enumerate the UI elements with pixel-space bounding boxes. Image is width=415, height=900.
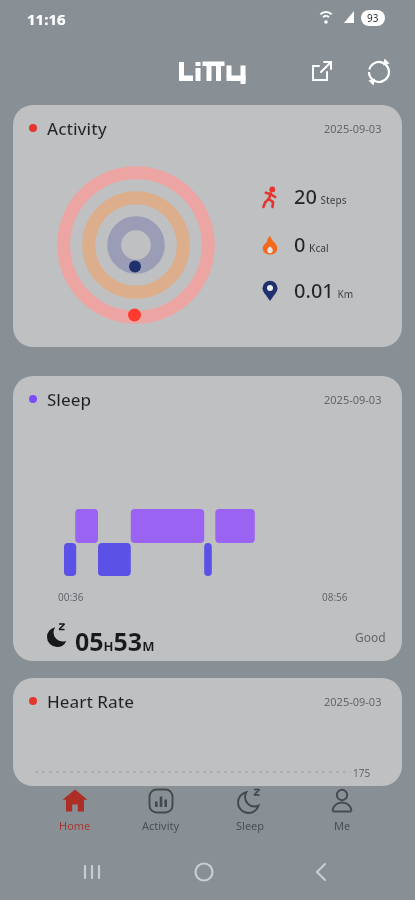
staticText: Heart Rate	[47, 690, 135, 713]
button[interactable]: Home	[35, 784, 115, 842]
button[interactable]	[306, 55, 338, 87]
staticText: Activity	[47, 117, 107, 140]
staticText: Me	[334, 818, 351, 833]
staticText: Sleep	[47, 388, 91, 411]
staticText: 11:16	[27, 9, 66, 29]
button[interactable]: Heart Rate	[13, 678, 402, 786]
staticText: 05H53M	[75, 624, 155, 658]
staticText: 20 Steps	[294, 183, 347, 210]
staticText: Good	[355, 629, 386, 645]
staticText: 00:36	[58, 590, 84, 604]
staticText: 2025-09-03	[324, 121, 382, 136]
button[interactable]: Me	[302, 784, 382, 842]
staticText: Activity	[142, 818, 180, 833]
button[interactable]: Activity	[121, 784, 201, 842]
staticText: 0 Kcal	[294, 231, 329, 258]
staticText: 175	[353, 766, 371, 780]
staticText: 08:56	[322, 590, 348, 604]
staticText: 2025-09-03	[324, 392, 382, 407]
staticText: 0.01 Km	[294, 277, 354, 304]
button[interactable]	[363, 55, 395, 87]
staticText: Home	[59, 818, 91, 833]
staticText: 93	[367, 11, 379, 25]
staticText: 2025-09-03	[324, 694, 382, 709]
button[interactable]: Sleep	[210, 784, 290, 842]
button[interactable]: Activity	[13, 105, 402, 347]
button[interactable]: Sleep	[13, 376, 402, 661]
staticText: Sleep	[236, 818, 265, 833]
